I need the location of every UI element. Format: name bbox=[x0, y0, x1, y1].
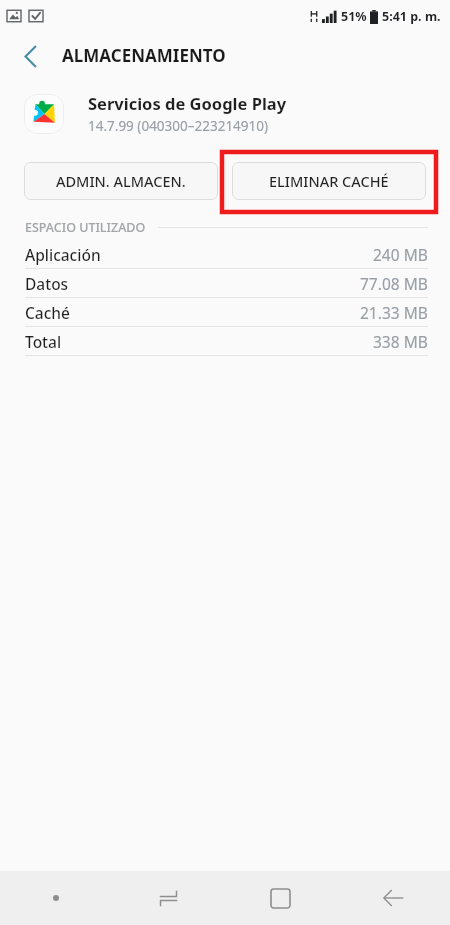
staticText: 77.08 MB bbox=[360, 273, 428, 294]
staticText: 240 MB bbox=[373, 244, 428, 265]
staticText: ALMACENAMIENTO bbox=[62, 44, 226, 67]
button[interactable]: Recientes bbox=[112, 871, 224, 925]
staticText: 338 MB bbox=[373, 331, 428, 352]
button[interactable]: Indicador bbox=[0, 871, 112, 925]
staticText: ELIMINAR CACHÉ bbox=[269, 171, 389, 191]
staticText: 51% bbox=[341, 8, 367, 25]
button[interactable]: ELIMINAR CACHÉ bbox=[232, 162, 426, 200]
staticText: Datos bbox=[25, 273, 69, 294]
staticText: Aplicación bbox=[25, 244, 101, 265]
staticText: Servicios de Google Play bbox=[88, 92, 287, 114]
staticText: 21.33 MB bbox=[360, 302, 428, 323]
button[interactable]: Inicio bbox=[224, 871, 337, 925]
staticText: Total bbox=[25, 331, 62, 352]
button[interactable]: Datos bbox=[0, 269, 450, 297]
staticText: Caché bbox=[25, 302, 70, 323]
staticText: ADMIN. ALMACEN. bbox=[56, 171, 186, 191]
button[interactable]: Atrás bbox=[337, 871, 450, 925]
button[interactable]: Atrás bbox=[10, 36, 50, 76]
button[interactable]: Total bbox=[0, 327, 450, 355]
button[interactable]: Caché bbox=[0, 298, 450, 326]
button[interactable]: Aplicación bbox=[0, 240, 450, 268]
staticText: ESPACIO UTILIZADO bbox=[25, 219, 146, 236]
staticText: 5:41 p. m. bbox=[382, 8, 441, 25]
button[interactable]: ADMIN. ALMACEN. bbox=[24, 162, 218, 200]
staticText: 14.7.99 (040300–223214910) bbox=[88, 117, 269, 135]
